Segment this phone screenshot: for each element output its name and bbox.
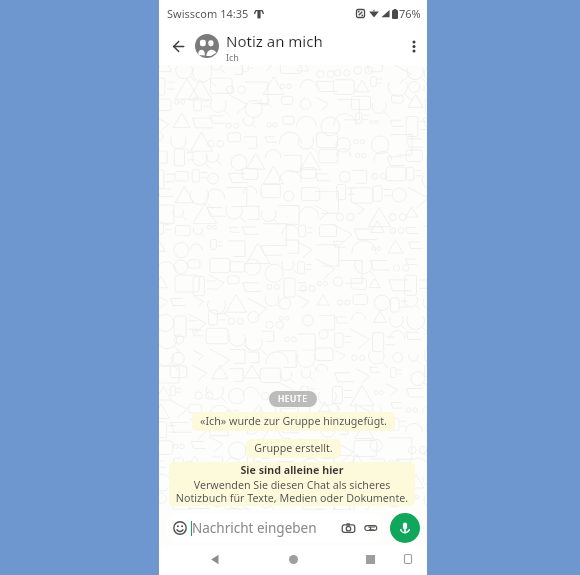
button[interactable]: Back: [203, 547, 227, 571]
button[interactable]: Attach: [364, 521, 378, 535]
button[interactable]: Camera: [342, 522, 355, 535]
staticText: Nachricht eingeben: [192, 519, 317, 537]
staticText: 76%: [399, 6, 421, 21]
button[interactable]: Record voice message: [390, 513, 420, 543]
staticText: Swisscom 14:35: [167, 6, 249, 21]
button[interactable]: One handed mode: [396, 547, 420, 571]
button[interactable]: Emoji: [166, 514, 385, 542]
button[interactable]: Home: [281, 547, 305, 571]
staticText: HEUTE: [278, 393, 308, 405]
button[interactable]: Notiz an mich: [226, 31, 323, 63]
staticText: Notiz an mich: [226, 31, 323, 51]
button[interactable]: Group photo: [195, 34, 219, 58]
staticText: Sie sind alleine hier: [240, 463, 344, 478]
button[interactable]: More options: [401, 27, 427, 65]
staticText: Ich: [226, 51, 239, 63]
button[interactable]: Emoji: [172, 520, 188, 536]
button[interactable]: Back: [164, 27, 192, 65]
button[interactable]: «Ich» wurde zur Gruppe hinzugefügt.: [192, 412, 395, 431]
staticText: Verwenden Sie diesen Chat als sicheres N…: [172, 478, 412, 505]
button[interactable]: HEUTE: [269, 391, 317, 407]
staticText: Gruppe erstellt.: [254, 441, 333, 456]
staticText: «Ich» wurde zur Gruppe hinzugefügt.: [200, 414, 387, 429]
button[interactable]: Recent apps: [358, 547, 382, 571]
button[interactable]: Sie sind alleine hier: [169, 462, 415, 506]
button[interactable]: Gruppe erstellt.: [246, 439, 341, 458]
